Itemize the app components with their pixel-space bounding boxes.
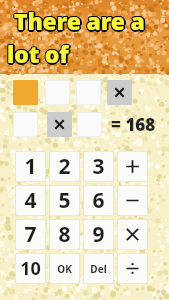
button[interactable]: OK: [49, 253, 80, 284]
staticText: lot of problems.: [6, 38, 168, 69]
staticText: There are a: [14, 4, 145, 35]
button[interactable]: [77, 112, 102, 137]
button[interactable]: 10: [15, 253, 46, 284]
staticText: 4: [24, 186, 37, 215]
button[interactable]: 1: [15, 151, 46, 182]
button[interactable]: 2: [49, 151, 80, 182]
staticText: There are a: [15, 6, 146, 37]
button[interactable]: Del: [83, 253, 114, 284]
staticText: 5: [58, 186, 71, 215]
button[interactable]: 7: [15, 219, 46, 250]
button[interactable]: plus: [117, 151, 148, 182]
button[interactable]: 4: [15, 185, 46, 216]
staticText: lot of problems.: [8, 37, 169, 68]
staticText: 1: [24, 152, 37, 181]
staticText: There are a: [13, 6, 144, 37]
staticText: = 168: [111, 113, 156, 136]
staticText: lot of problems.: [7, 40, 169, 71]
staticText: Del: [90, 262, 107, 276]
staticText: 7: [24, 220, 37, 249]
staticText: OK: [57, 262, 72, 276]
staticText: lot of problems.: [6, 39, 168, 70]
button[interactable]: 3: [83, 151, 114, 182]
staticText: 10: [20, 256, 41, 281]
staticText: lot of problems.: [7, 37, 169, 68]
button[interactable]: 5: [49, 185, 80, 216]
staticText: There are a: [15, 4, 146, 35]
button[interactable]: 6: [83, 185, 114, 216]
staticText: There are a: [13, 5, 144, 36]
staticText: There are a: [13, 4, 144, 35]
staticText: There are a: [14, 5, 145, 36]
staticText: 8: [58, 220, 71, 249]
staticText: 9: [92, 220, 105, 249]
button[interactable]: [13, 80, 38, 105]
staticText: There are a: [16, 5, 147, 36]
button[interactable]: operator x: [47, 112, 72, 137]
staticText: lot of problems.: [8, 39, 169, 70]
staticText: 2: [58, 152, 71, 181]
staticText: There are a: [14, 6, 145, 37]
staticText: lot of problems.: [8, 38, 169, 69]
staticText: lot of problems.: [7, 39, 169, 70]
staticText: lot of problems.: [9, 38, 169, 69]
staticText: lot of problems.: [7, 38, 169, 69]
staticText: 6: [92, 186, 105, 215]
button[interactable]: 9: [83, 219, 114, 250]
button[interactable]: minus: [117, 185, 148, 216]
button[interactable]: operator x: [107, 80, 132, 105]
button[interactable]: [13, 112, 38, 137]
button[interactable]: [45, 80, 70, 105]
staticText: There are a: [14, 7, 145, 38]
staticText: 3: [92, 152, 105, 181]
button[interactable]: divide: [117, 253, 148, 284]
button[interactable]: 8: [49, 219, 80, 250]
button[interactable]: times: [117, 219, 148, 250]
button[interactable]: [76, 80, 101, 105]
staticText: lot of problems.: [6, 37, 168, 68]
staticText: There are a: [15, 5, 146, 36]
